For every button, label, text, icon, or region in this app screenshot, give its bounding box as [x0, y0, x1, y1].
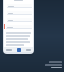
button[interactable]: [4, 10, 33, 15]
button[interactable]: Previous: [6, 49, 12, 51]
button[interactable]: Next: [26, 49, 31, 51]
button[interactable]: [4, 3, 33, 8]
button[interactable]: Submit: [17, 48, 21, 52]
button[interactable]: [4, 17, 33, 22]
button[interactable]: [4, 24, 33, 29]
button[interactable]: [4, 31, 33, 47]
